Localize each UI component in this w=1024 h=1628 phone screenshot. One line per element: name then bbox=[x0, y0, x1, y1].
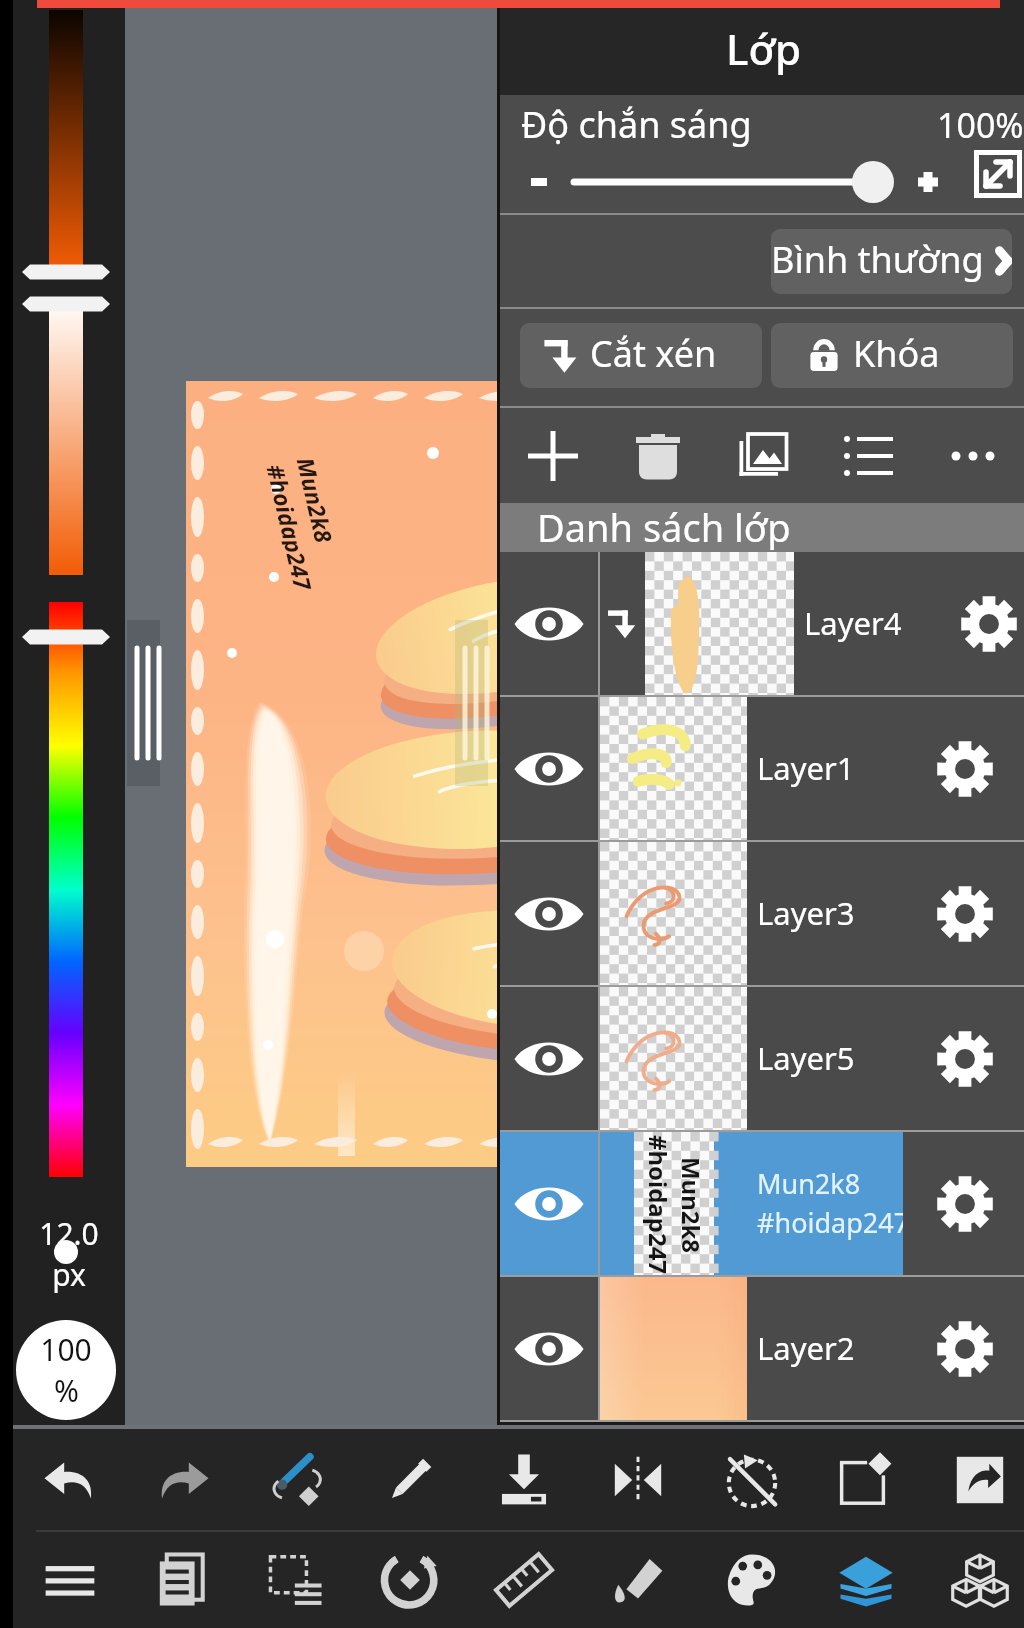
button[interactable]: Increase opacity bbox=[903, 157, 953, 207]
button[interactable]: Cắt xén bbox=[520, 323, 762, 388]
button[interactable]: Fit to screen bbox=[965, 141, 1024, 206]
button[interactable]: Redo bbox=[126, 1429, 239, 1530]
staticText: Độ chắn sáng bbox=[521, 100, 752, 149]
button[interactable]: Layer settings bbox=[903, 697, 1024, 840]
button[interactable]: Brush and eraser bbox=[239, 1429, 353, 1530]
button[interactable]: Resize handle bbox=[455, 620, 488, 786]
staticText: px bbox=[52, 1254, 86, 1295]
button[interactable]: Pages bbox=[126, 1532, 239, 1628]
staticText: 100 bbox=[40, 1329, 92, 1370]
button[interactable]: Ruler bbox=[467, 1532, 581, 1628]
button[interactable]: Share bbox=[923, 1429, 1024, 1530]
staticText: Cắt xén bbox=[590, 329, 717, 378]
button[interactable]: Khóa bbox=[771, 323, 1013, 388]
button[interactable]: Filters bbox=[353, 1532, 467, 1628]
button[interactable]: Brush opacity 100 percent bbox=[16, 1320, 116, 1420]
button[interactable]: Add layer bbox=[500, 408, 605, 503]
button[interactable]: Menu bbox=[13, 1532, 126, 1628]
staticText: Mun2k8 bbox=[674, 1156, 707, 1253]
staticText: Layer1 bbox=[757, 747, 855, 789]
button[interactable]: Decrease opacity bbox=[514, 157, 564, 207]
button[interactable]: Layer1 bbox=[500, 697, 1024, 840]
button[interactable]: Undo bbox=[13, 1429, 126, 1530]
staticText: #hoidap247 bbox=[264, 461, 320, 593]
staticText: Bình thường bbox=[771, 235, 984, 284]
button[interactable]: Layer5 bbox=[500, 987, 1024, 1130]
button[interactable]: Transform bbox=[809, 1429, 923, 1530]
button[interactable]: Fill tool bbox=[581, 1532, 695, 1628]
button[interactable]: Layer settings bbox=[903, 1132, 1024, 1275]
staticText: Layer3 bbox=[757, 892, 855, 934]
staticText: 100% bbox=[937, 102, 1024, 148]
button[interactable]: Duplicate layer bbox=[710, 408, 815, 503]
button[interactable]: Eyedropper bbox=[353, 1429, 467, 1530]
staticText: Layer5 bbox=[757, 1037, 855, 1079]
button[interactable]: Palette bbox=[695, 1532, 809, 1628]
button[interactable]: Layers bbox=[809, 1532, 923, 1628]
button[interactable]: Materials bbox=[923, 1532, 1024, 1628]
button[interactable]: Layer settings bbox=[903, 1277, 1024, 1420]
staticText: Layer2 bbox=[757, 1327, 855, 1369]
staticText: Danh sách lớp bbox=[537, 501, 791, 550]
button[interactable]: Delete layer bbox=[605, 408, 710, 503]
button[interactable]: Layer4 bbox=[500, 552, 1024, 695]
button[interactable]: More options bbox=[920, 408, 1024, 503]
button[interactable]: Disable rotation bbox=[695, 1429, 809, 1530]
button[interactable]: Layer settings bbox=[950, 552, 1024, 695]
staticText: Mun2k8 #hoidap247 bbox=[757, 1165, 910, 1241]
button[interactable]: Layer2 bbox=[500, 1277, 1024, 1420]
button[interactable]: Layer list bbox=[815, 408, 920, 503]
staticText: Layer4 bbox=[804, 602, 902, 644]
staticText: Mun2k8 bbox=[291, 454, 340, 546]
button[interactable]: Import bbox=[467, 1429, 581, 1530]
staticText: % bbox=[54, 1370, 79, 1411]
staticText: 12.0 bbox=[39, 1213, 99, 1254]
button[interactable]: Mirror bbox=[581, 1429, 695, 1530]
button[interactable]: Layer3 bbox=[500, 842, 1024, 985]
button[interactable]: Bình thường bbox=[771, 229, 1012, 294]
staticText: Khóa bbox=[853, 329, 940, 378]
staticText: #hoidap247 bbox=[641, 1134, 674, 1274]
button[interactable]: Selection bbox=[239, 1532, 353, 1628]
button[interactable]: Resize handle bbox=[127, 620, 160, 786]
staticText: Lớp bbox=[726, 20, 802, 77]
button[interactable]: Mun2k8 bbox=[500, 1132, 1024, 1275]
button[interactable]: Layer settings bbox=[903, 987, 1024, 1130]
button[interactable]: Layer settings bbox=[903, 842, 1024, 985]
